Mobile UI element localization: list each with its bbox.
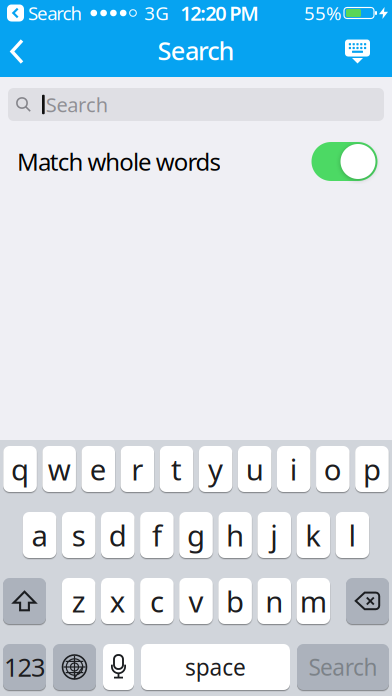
staticText: 55% bbox=[304, 1, 342, 25]
button[interactable]: a bbox=[23, 512, 56, 558]
staticText: q bbox=[11, 449, 29, 488]
staticText: z bbox=[72, 581, 86, 620]
button[interactable]: s bbox=[62, 512, 95, 558]
staticText: g bbox=[187, 515, 205, 554]
button[interactable]: t bbox=[160, 446, 193, 492]
button[interactable]: m bbox=[296, 578, 330, 624]
button[interactable]: Delete bbox=[346, 578, 389, 624]
button[interactable]: x bbox=[101, 578, 135, 624]
staticText: d bbox=[109, 515, 127, 554]
staticText: j bbox=[270, 515, 278, 554]
staticText: c bbox=[150, 581, 164, 620]
staticText: x bbox=[110, 581, 126, 620]
staticText: v bbox=[188, 581, 203, 620]
button[interactable]: b bbox=[218, 578, 252, 624]
staticText: Match whole words bbox=[17, 146, 220, 177]
button[interactable]: q bbox=[3, 446, 37, 492]
button[interactable]: Numbers bbox=[3, 644, 46, 690]
staticText: r bbox=[131, 449, 143, 488]
button[interactable]: j bbox=[257, 512, 291, 558]
staticText: 12:20 PM bbox=[180, 0, 259, 26]
staticText: y bbox=[208, 449, 223, 488]
staticText: Search bbox=[308, 652, 377, 682]
button[interactable]: u bbox=[238, 446, 271, 492]
staticText: u bbox=[246, 449, 264, 488]
button[interactable]: Search field bbox=[8, 88, 384, 121]
staticText: l bbox=[348, 515, 356, 554]
button[interactable]: h bbox=[218, 512, 252, 558]
staticText: Search bbox=[46, 91, 108, 118]
staticText: t bbox=[171, 449, 182, 488]
button[interactable]: z bbox=[62, 578, 95, 624]
staticText: p bbox=[363, 449, 381, 488]
button[interactable]: Back bbox=[0, 25, 24, 77]
button[interactable]: y bbox=[199, 446, 232, 492]
staticText: 123 bbox=[4, 650, 45, 684]
button[interactable]: v bbox=[179, 578, 213, 624]
staticText: f bbox=[152, 515, 162, 554]
staticText: Search bbox=[157, 34, 234, 67]
staticText: o bbox=[324, 449, 342, 488]
button[interactable]: p bbox=[355, 446, 389, 492]
button[interactable]: Shift bbox=[3, 578, 46, 624]
button[interactable]: g bbox=[179, 512, 213, 558]
staticText: Search bbox=[28, 1, 82, 25]
button[interactable]: Dictate bbox=[103, 644, 134, 690]
staticText: e bbox=[90, 449, 107, 488]
button[interactable]: c bbox=[140, 578, 174, 624]
button[interactable]: o bbox=[316, 446, 350, 492]
staticText: w bbox=[48, 449, 71, 488]
button[interactable]: n bbox=[257, 578, 291, 624]
staticText: m bbox=[300, 581, 327, 620]
staticText: i bbox=[290, 449, 298, 488]
button[interactable]: space bbox=[141, 644, 290, 690]
button[interactable]: f bbox=[140, 512, 174, 558]
button[interactable]: e bbox=[81, 446, 115, 492]
button[interactable]: i bbox=[277, 446, 310, 492]
button[interactable]: Next keyboard bbox=[53, 644, 96, 690]
button[interactable]: Dismiss keyboard bbox=[345, 26, 392, 76]
button[interactable]: Search bbox=[297, 644, 389, 690]
button[interactable]: Back to Search bbox=[7, 1, 82, 25]
button[interactable]: r bbox=[120, 446, 154, 492]
staticText: k bbox=[305, 515, 321, 554]
staticText: h bbox=[226, 515, 244, 554]
button[interactable]: k bbox=[296, 512, 330, 558]
staticText: n bbox=[265, 581, 283, 620]
button[interactable]: l bbox=[336, 512, 369, 558]
staticText: space bbox=[185, 652, 246, 682]
staticText: s bbox=[72, 515, 86, 554]
button[interactable]: Match whole words bbox=[311, 142, 377, 181]
staticText: a bbox=[32, 515, 48, 554]
button[interactable]: d bbox=[101, 512, 135, 558]
button[interactable]: w bbox=[42, 446, 76, 492]
staticText: b bbox=[226, 581, 244, 620]
staticText: 3G bbox=[144, 1, 169, 25]
